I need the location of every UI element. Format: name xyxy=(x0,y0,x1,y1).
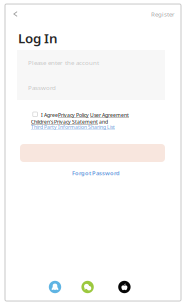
staticText: Forgot Password xyxy=(72,169,120,177)
staticText: Register xyxy=(151,10,175,18)
staticText: Children's Privacy Statement and xyxy=(31,118,108,125)
staticText: Third Party Information Sharing List xyxy=(31,124,115,131)
staticText: Password xyxy=(28,83,56,92)
button[interactable]: Forgot Password xyxy=(72,169,120,177)
staticText: Please enter the account xyxy=(28,58,99,67)
button[interactable]: Sign in with Apple xyxy=(118,281,131,293)
button[interactable]: Sign in with QQ xyxy=(49,281,61,293)
staticText: Log In xyxy=(18,29,58,47)
staticText: I AgreePrivacy Policy User Agreement xyxy=(31,112,129,118)
button[interactable]: Back xyxy=(11,9,20,18)
button[interactable]: Agree to terms xyxy=(31,111,37,117)
button[interactable]: Register xyxy=(151,10,175,18)
button[interactable]: Sign in with WeChat xyxy=(81,281,94,293)
